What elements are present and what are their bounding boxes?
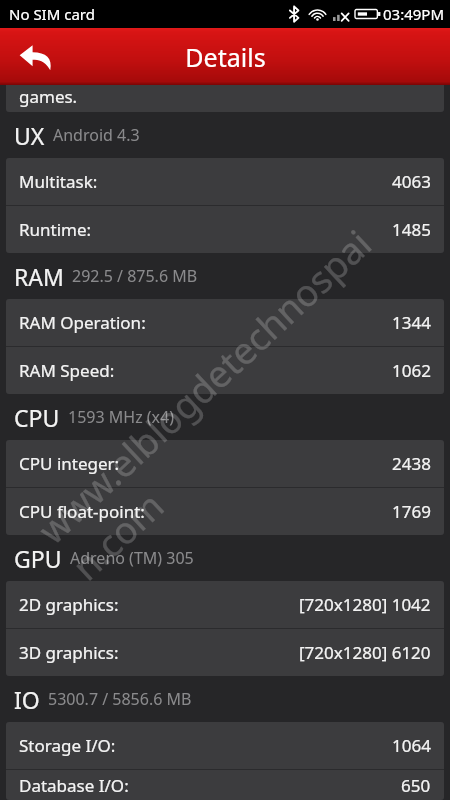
- staticText: Multitask:: [19, 170, 98, 193]
- staticText: 650: [401, 774, 431, 797]
- staticText: RAM Operation:: [19, 311, 146, 334]
- staticText: Android 4.3: [53, 124, 140, 146]
- staticText: 2438: [392, 452, 431, 475]
- staticText: 1769: [392, 500, 431, 523]
- button[interactable]: 3D graphics:: [6, 629, 444, 676]
- staticText: 292.5 / 875.6 MB: [72, 265, 198, 287]
- button[interactable]: Storage I/O:: [6, 722, 444, 769]
- button[interactable]: Database I/O:: [6, 770, 444, 800]
- button[interactable]: 2D graphics:: [6, 581, 444, 628]
- staticText: GPU: [14, 543, 62, 574]
- staticText: 1344: [392, 311, 431, 334]
- staticText: 4063: [392, 170, 431, 193]
- button[interactable]: CPU integer:: [6, 440, 444, 487]
- staticText: RAM: [14, 261, 64, 292]
- staticText: CPU float-point:: [19, 500, 145, 523]
- staticText: Adreno (TM) 305: [70, 547, 194, 569]
- staticText: 5300.7 / 5856.6 MB: [48, 688, 192, 710]
- staticText: IO: [14, 684, 40, 715]
- button[interactable]: RAM Speed:: [6, 347, 444, 394]
- staticText: Storage I/O:: [19, 734, 116, 757]
- staticText: Details: [185, 40, 266, 74]
- button[interactable]: CPU float-point:: [6, 488, 444, 535]
- staticText: [720x1280] 6120: [299, 641, 431, 664]
- staticText: Runtime:: [19, 218, 92, 241]
- staticText: CPU: [14, 402, 60, 433]
- staticText: 1485: [392, 218, 431, 241]
- staticText: 1593 MHz (x4): [68, 406, 175, 428]
- button[interactable]: Back: [0, 28, 72, 85]
- staticText: RAM Speed:: [19, 359, 115, 382]
- staticText: No SIM card: [9, 4, 95, 24]
- button[interactable]: games.: [6, 85, 444, 112]
- staticText: 1062: [392, 359, 431, 382]
- staticText: UX: [14, 120, 45, 151]
- button[interactable]: Runtime:: [6, 206, 444, 253]
- staticText: 03:49PM: [383, 4, 445, 24]
- staticText: Database I/O:: [19, 774, 129, 797]
- button[interactable]: RAM Operation:: [6, 299, 444, 346]
- button[interactable]: Multitask:: [6, 158, 444, 205]
- staticText: [720x1280] 1042: [299, 593, 431, 616]
- staticText: 3D graphics:: [19, 641, 119, 664]
- staticText: www.elblogdetechnospain.com: [26, 210, 424, 590]
- staticText: games.: [19, 85, 78, 108]
- staticText: CPU integer:: [19, 452, 120, 475]
- staticText: 1064: [392, 734, 431, 757]
- staticText: 2D graphics:: [19, 593, 119, 616]
